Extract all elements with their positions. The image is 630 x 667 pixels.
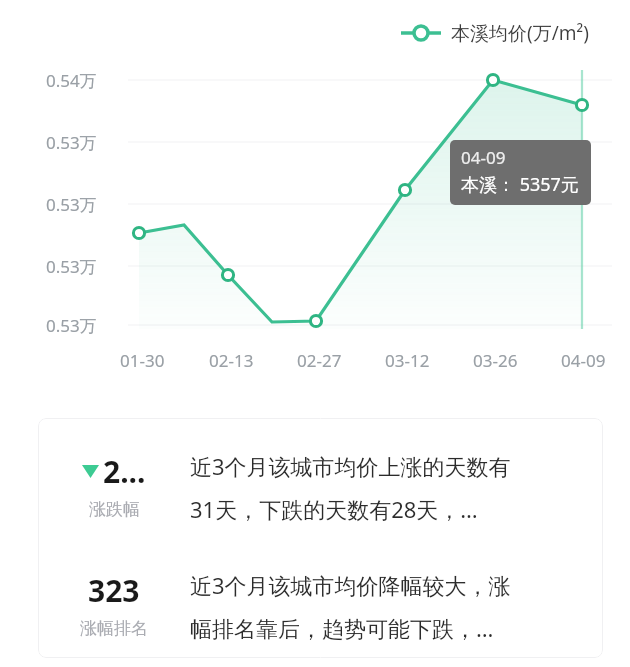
staticText: 近3个月该城市均价上涨的天数有 (190, 451, 511, 481)
staticText: 0.53万 (46, 255, 97, 278)
button[interactable]: 本溪均价(万/m²) (398, 18, 591, 48)
staticText: 03-12 (385, 349, 430, 372)
staticText: 涨幅排名 (80, 618, 148, 639)
staticText: 04-09 (461, 146, 506, 169)
staticText: 0.53万 (46, 131, 97, 154)
staticText: 2... (103, 451, 146, 492)
staticText: 涨跌幅 (89, 499, 140, 520)
staticText: 02-13 (209, 349, 254, 372)
staticText: 01-30 (120, 349, 165, 372)
other: 下跌 (82, 465, 99, 478)
staticText: 本溪： 5357元 (461, 172, 579, 197)
button[interactable]: 04-09 (450, 140, 591, 205)
staticText: 31天，下跌的天数有28天，… (190, 494, 478, 524)
staticText: 03-26 (473, 349, 518, 372)
staticText: 323 (88, 570, 140, 611)
staticText: 0.53万 (46, 314, 97, 337)
staticText: 近3个月该城市均价降幅较大，涨 (190, 570, 511, 600)
staticText: 本溪均价(万/m²) (451, 20, 589, 46)
staticText: 幅排名靠后，趋势可能下跌，… (190, 613, 494, 643)
staticText: 0.53万 (46, 193, 97, 216)
staticText: 02-27 (297, 349, 342, 372)
staticText: 04-09 (561, 349, 606, 372)
button[interactable]: 下跌 (38, 418, 603, 658)
staticText: 0.54万 (46, 69, 97, 92)
